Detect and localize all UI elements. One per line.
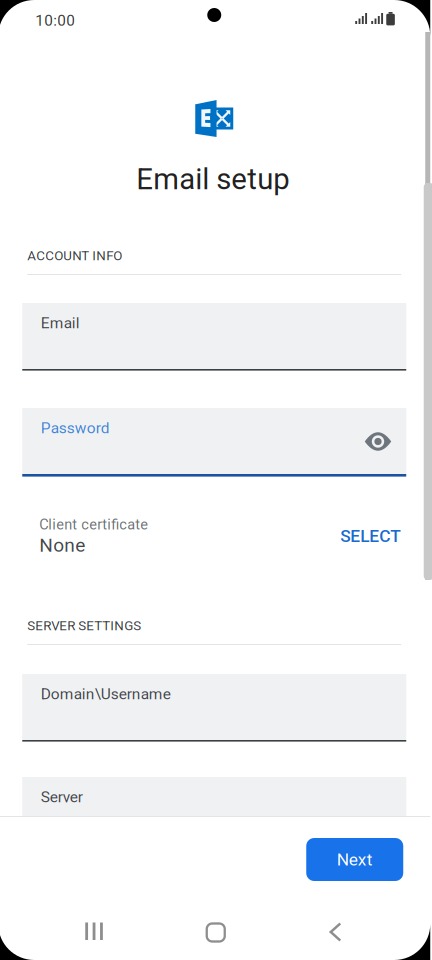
- staticText: Domain\Username: [41, 685, 171, 703]
- button[interactable]: Back: [288, 896, 384, 960]
- button[interactable]: Home: [167, 896, 261, 960]
- staticText: Email: [41, 314, 80, 332]
- button[interactable]: Recent apps: [46, 896, 142, 960]
- staticText: Server: [41, 788, 83, 806]
- staticText: None: [39, 534, 85, 556]
- button[interactable]: Next: [306, 838, 403, 881]
- staticText: Password: [41, 419, 110, 437]
- staticText: ACCOUNT INFO: [27, 248, 122, 264]
- staticText: 10:00: [35, 11, 75, 29]
- staticText: Email setup: [136, 162, 289, 196]
- staticText: Next: [337, 849, 373, 870]
- staticText: SERVER SETTINGS: [27, 618, 141, 634]
- staticText: SELECT: [340, 526, 401, 546]
- button[interactable]: Client certificate: [0, 0, 430, 586]
- staticText: Client certificate: [39, 516, 148, 533]
